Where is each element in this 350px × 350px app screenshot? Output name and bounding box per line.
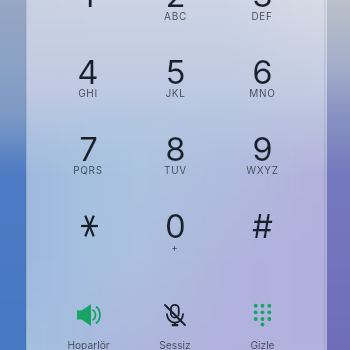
other: Hoparlör bbox=[77, 304, 100, 326]
staticText: 0 bbox=[165, 206, 186, 246]
button[interactable] bbox=[45, 123, 131, 185]
staticText: 7 bbox=[79, 129, 98, 169]
staticText: ABC bbox=[164, 10, 187, 22]
button[interactable]: Yıldız bbox=[45, 196, 131, 258]
staticText: MNO bbox=[249, 87, 276, 99]
staticText: 5 bbox=[165, 52, 186, 92]
staticText: Gizle bbox=[250, 339, 275, 350]
staticText: 2 bbox=[165, 0, 186, 15]
button[interactable] bbox=[219, 0, 305, 31]
staticText: WXYZ bbox=[246, 164, 279, 176]
staticText: PQRS bbox=[73, 164, 103, 176]
staticText: GHI bbox=[78, 87, 98, 99]
staticText: + bbox=[171, 241, 179, 253]
staticText: Sessiz bbox=[159, 339, 191, 350]
staticText: 8 bbox=[165, 129, 186, 169]
other: Gizle bbox=[254, 304, 271, 326]
button[interactable] bbox=[45, 46, 131, 108]
button[interactable] bbox=[132, 46, 218, 108]
other: Sessiz bbox=[164, 304, 186, 326]
staticText: TUV bbox=[164, 164, 187, 176]
button[interactable] bbox=[45, 298, 131, 350]
staticText: 4 bbox=[77, 52, 99, 92]
button[interactable] bbox=[132, 298, 218, 350]
staticText: 9 bbox=[252, 129, 273, 169]
staticText: # bbox=[252, 206, 273, 246]
button[interactable] bbox=[132, 123, 218, 185]
staticText: 3 bbox=[252, 0, 273, 15]
button[interactable] bbox=[219, 46, 305, 108]
staticText: DEF bbox=[251, 10, 273, 22]
button[interactable] bbox=[132, 200, 218, 262]
button[interactable] bbox=[219, 200, 305, 262]
button[interactable] bbox=[45, 0, 131, 31]
staticText: 1 bbox=[81, 0, 95, 15]
staticText: JKL bbox=[165, 87, 186, 99]
button[interactable] bbox=[132, 0, 218, 31]
button[interactable] bbox=[219, 123, 305, 185]
staticText: Hoparlör bbox=[67, 339, 110, 350]
staticText: 6 bbox=[252, 52, 273, 92]
button[interactable] bbox=[219, 298, 305, 350]
